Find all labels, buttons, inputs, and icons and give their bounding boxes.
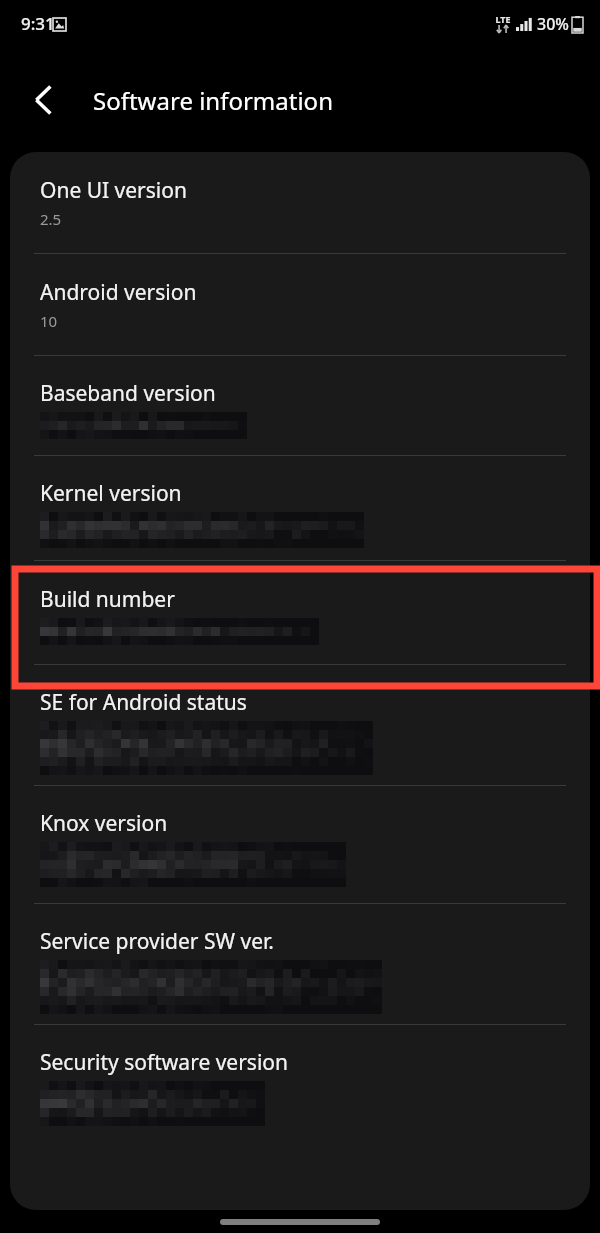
button[interactable]: Security software version [10,1025,590,1139]
button[interactable]: Service provider SW ver. [10,904,590,1024]
staticText: Baseband version [40,379,216,408]
staticText: Android version [40,278,197,307]
button[interactable]: One UI version [10,152,590,253]
staticText: 30% [537,13,569,35]
staticText: One UI version [40,176,187,205]
staticText: 9:31 [21,12,55,35]
staticText: Service provider SW ver. [40,927,274,956]
staticText: Software information [93,84,333,117]
staticText: Security software version [40,1048,289,1077]
button[interactable]: Back [20,76,68,124]
button[interactable]: Kernel version [10,456,590,560]
button[interactable]: Baseband version [10,356,590,455]
button[interactable]: SE for Android status [10,665,590,785]
staticText: Build number [40,585,175,614]
button[interactable]: Build number [10,561,590,664]
staticText: LTE [495,13,511,25]
button[interactable]: Knox version [10,786,590,903]
staticText: 10 [40,311,58,331]
staticText: 2.5 [40,209,62,229]
staticText: Kernel version [40,479,182,508]
staticText: Knox version [40,809,168,838]
button[interactable]: Android version [10,254,590,355]
staticText: SE for Android status [40,688,247,717]
